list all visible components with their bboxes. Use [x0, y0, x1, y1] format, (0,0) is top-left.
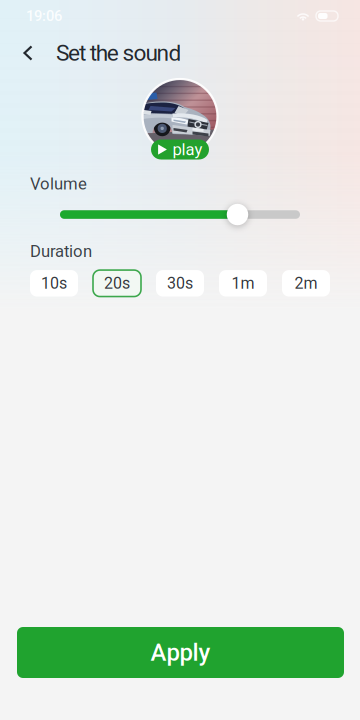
- button[interactable]: 1m: [219, 270, 267, 297]
- button[interactable]: Back: [14, 36, 42, 70]
- staticText: Apply: [150, 638, 210, 666]
- staticText: 1m: [231, 274, 254, 293]
- button[interactable]: Apply: [17, 627, 344, 678]
- staticText: play: [172, 140, 202, 159]
- staticText: 10s: [41, 274, 67, 293]
- button[interactable]: play: [151, 139, 209, 159]
- button[interactable]: 2m: [282, 270, 330, 297]
- staticText: 20s: [104, 274, 130, 293]
- staticText: Duration: [30, 241, 92, 261]
- button[interactable]: 30s: [156, 270, 204, 297]
- staticText: 19:06: [26, 7, 62, 25]
- staticText: 2m: [294, 274, 317, 293]
- button[interactable]: 10s: [30, 270, 78, 297]
- staticText: Volume: [30, 174, 87, 193]
- button[interactable]: 20s: [93, 270, 141, 297]
- staticText: Set the sound: [56, 40, 181, 66]
- staticText: 30s: [167, 274, 193, 293]
